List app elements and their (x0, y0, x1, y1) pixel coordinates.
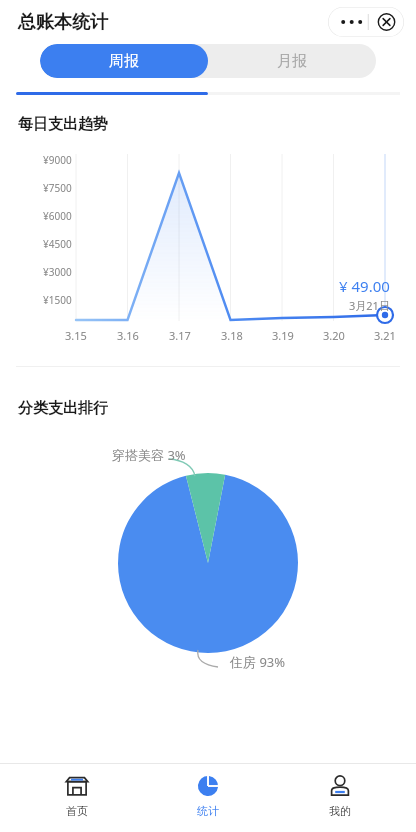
button[interactable]: 月报 (208, 44, 376, 78)
staticText: 3月21日 (349, 298, 390, 313)
staticText: 周报 (109, 52, 139, 71)
staticText: 我的 (329, 804, 351, 818)
staticText: 3.19 (272, 328, 294, 343)
staticText: ¥ 49.00 (339, 276, 390, 296)
staticText: 每日支出趋势 (18, 115, 108, 134)
staticText: 穿搭美容 3% (112, 446, 186, 464)
button[interactable]: More and Close (328, 7, 404, 37)
staticText: ¥9000 (43, 153, 72, 167)
staticText: 总账本统计 (18, 11, 108, 34)
staticText: ¥3000 (43, 265, 72, 279)
staticText: ¥6000 (43, 209, 72, 223)
staticText: 分类支出排行 (18, 399, 108, 418)
button[interactable]: 我的 (285, 764, 395, 832)
staticText: 3.21 (374, 328, 396, 343)
staticText: 3.17 (169, 328, 191, 343)
staticText: 3.20 (323, 328, 345, 343)
staticText: 3.15 (65, 328, 87, 343)
staticText: 3.16 (117, 328, 139, 343)
staticText: 月报 (277, 52, 307, 71)
staticText: ¥1500 (43, 293, 72, 307)
staticText: 首页 (66, 804, 88, 818)
button[interactable]: 周报 (40, 44, 208, 78)
staticText: ¥4500 (43, 237, 72, 251)
button[interactable]: 统计 (153, 764, 263, 832)
staticText: ¥7500 (43, 181, 72, 195)
staticText: 3.18 (221, 328, 243, 343)
staticText: 统计 (197, 804, 219, 818)
staticText: 住房 93% (230, 653, 286, 671)
button[interactable]: 首页 (22, 764, 132, 832)
